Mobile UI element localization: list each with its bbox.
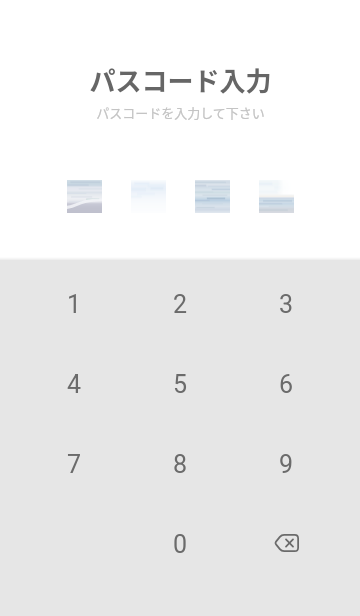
button[interactable]: 1 [21,261,127,341]
staticText: 9 [279,450,294,479]
button[interactable]: 9 [233,421,339,501]
staticText: 0 [173,530,188,559]
staticText: 8 [173,450,188,479]
button[interactable]: 5 [127,341,233,421]
button[interactable]: 3 [233,261,339,341]
staticText: パスコードを入力して下さい [96,103,265,122]
staticText: 7 [67,450,82,479]
staticText: パスコード入力 [89,61,272,97]
staticText: 3 [279,290,294,319]
staticText: 5 [173,370,188,399]
button[interactable]: Delete [233,501,339,581]
button[interactable]: 8 [127,421,233,501]
button[interactable]: 6 [233,341,339,421]
button[interactable]: 4 [21,341,127,421]
staticText: 1 [67,290,82,319]
staticText: 4 [67,370,82,399]
button[interactable]: 0 [127,501,233,581]
staticText: 6 [279,370,294,399]
staticText: 2 [173,290,188,319]
button[interactable]: 2 [127,261,233,341]
button[interactable]: 7 [21,421,127,501]
